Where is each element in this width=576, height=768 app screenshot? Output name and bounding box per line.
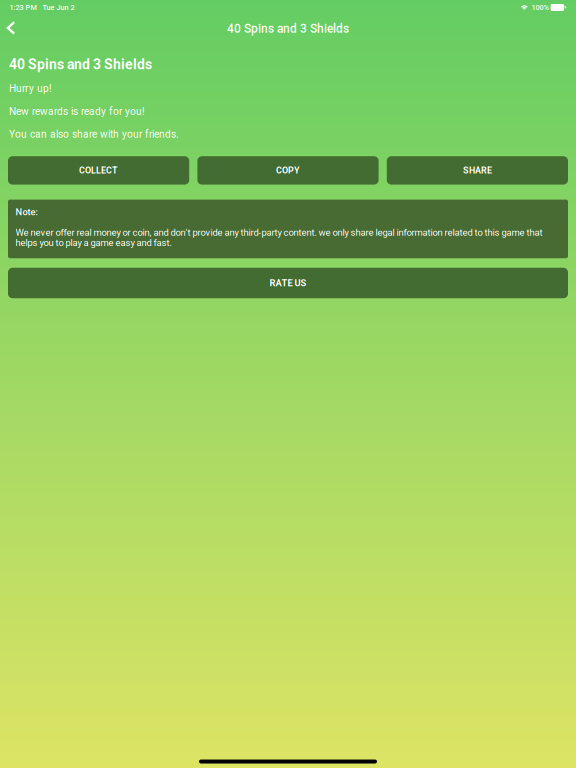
staticText: Tue Jun 2 (42, 3, 74, 12)
staticText: Note: (15, 207, 37, 217)
staticText: RATE US (269, 277, 306, 288)
button[interactable]: COPY (197, 156, 379, 185)
staticText: 1:23 PM (9, 3, 36, 12)
staticText: We never offer real money or coin, and d… (15, 227, 542, 248)
staticText: 40 Spins and 3 Shields (227, 22, 349, 36)
staticText: You can also share with your friends. (9, 128, 179, 140)
button[interactable]: RATE US (0, 268, 576, 298)
staticText: 40 Spins and 3 Shields (9, 56, 152, 73)
button[interactable]: SHARE (387, 156, 568, 185)
button[interactable]: COLLECT (8, 156, 189, 185)
staticText: Hurry up! (9, 83, 52, 94)
staticText: COLLECT (79, 165, 118, 176)
button[interactable]: Back (0, 15, 26, 38)
staticText: 100% (532, 3, 549, 12)
staticText: SHARE (463, 165, 492, 176)
staticText: COPY (276, 165, 300, 176)
staticText: New rewards is ready for you! (9, 106, 145, 117)
